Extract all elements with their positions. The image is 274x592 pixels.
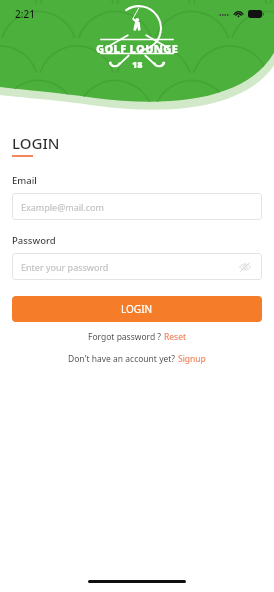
staticText: GOLF LOUNGE — [96, 41, 179, 56]
button[interactable]: Enter your password — [12, 253, 262, 280]
staticText: Password — [12, 234, 56, 247]
staticText: Example@mail.com — [21, 201, 104, 213]
button[interactable]: LOGIN — [12, 296, 262, 322]
button[interactable]: Example@mail.com — [12, 193, 262, 220]
staticText: Reset — [164, 331, 187, 343]
staticText: Don't have an account yet? — [68, 353, 178, 365]
staticText: LOGIN — [12, 133, 60, 153]
button[interactable]: Reset — [164, 331, 187, 343]
staticText: 2:21 — [15, 7, 35, 21]
staticText: Signup — [178, 353, 206, 365]
button[interactable]: Show password — [237, 259, 253, 275]
staticText: Enter your password — [21, 261, 109, 273]
staticText: Email — [12, 174, 37, 187]
button[interactable]: Signup — [178, 353, 206, 365]
staticText: LOGIN — [121, 302, 153, 316]
staticText: 18 — [132, 58, 143, 70]
staticText: Forgot password ? — [88, 331, 164, 343]
